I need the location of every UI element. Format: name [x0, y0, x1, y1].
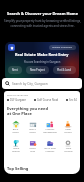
- button[interactable]: Rent: [8, 66, 22, 74]
- button[interactable]: Home Interior: [7, 139, 24, 153]
- button[interactable]: Verified Properties: [49, 45, 76, 50]
- staticText: Sell or Rent Property: [44, 147, 56, 153]
- staticText: Sec 54: [69, 98, 77, 102]
- other: Home: [8, 44, 15, 51]
- button[interactable]: Property Management: [41, 120, 59, 134]
- staticText: Simplify your property hunt by browsing …: [4, 19, 81, 28]
- other: Search: [5, 81, 10, 86]
- button[interactable]: Sell or Rent Property: [41, 139, 59, 153]
- staticText: Verified Properties: [52, 46, 73, 49]
- button[interactable]: Buy a Home: [7, 120, 24, 134]
- staticText: Search & Discover your Dream Home: [7, 11, 78, 16]
- button[interactable]: Rent a Home: [24, 120, 41, 134]
- staticText: RECENT SEARCHES: [7, 93, 29, 96]
- button[interactable]: More Services: [59, 139, 77, 153]
- staticText: New Project: [30, 68, 45, 72]
- staticText: Plot & Land: [57, 68, 72, 72]
- button[interactable]: Legal Service: [59, 120, 77, 134]
- staticText: Home Interior: [12, 147, 20, 153]
- staticText: Property Management: [43, 128, 57, 134]
- staticText: DLF Gurgaon: [10, 98, 27, 102]
- button[interactable]: Plot & Land: [53, 66, 76, 74]
- staticText: More Services: [64, 147, 73, 153]
- staticText: Buy a Home: [12, 128, 19, 134]
- staticText: Top Selling: [7, 166, 29, 171]
- button[interactable]: Home: [5, 42, 79, 80]
- staticText: Legal Service: [64, 128, 72, 134]
- button[interactable]: Sec 54: [66, 98, 77, 102]
- staticText: You are Searching in Gurgaon: [24, 60, 61, 64]
- staticText: Everything you need at One Place: [7, 106, 49, 116]
- staticText: Search by City, Gurgaon: [12, 82, 48, 86]
- staticText: Real Estate Make Rent Entry: [15, 52, 69, 57]
- staticText: Rent: [12, 68, 18, 72]
- staticText: Home Loan: [29, 147, 36, 153]
- button[interactable]: DLF Gurgaon: [7, 98, 27, 102]
- staticText: Rent a Home: [29, 128, 36, 134]
- staticText: Golf Course Road: [37, 98, 59, 102]
- button[interactable]: Golf Course Road: [34, 98, 59, 102]
- button[interactable]: Search: [2, 78, 82, 89]
- button[interactable]: New Project: [26, 66, 49, 74]
- button[interactable]: Home Loan: [24, 139, 41, 153]
